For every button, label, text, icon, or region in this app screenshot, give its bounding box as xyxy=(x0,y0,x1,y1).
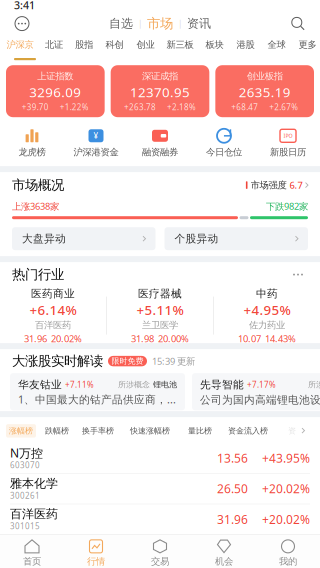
button[interactable]: Messages xyxy=(7,13,37,35)
staticText: 快速涨幅榜 xyxy=(130,426,170,436)
staticText: 26.50 xyxy=(217,481,248,497)
button[interactable]: 快速涨幅榜 xyxy=(130,426,170,436)
button[interactable]: 涨幅榜 xyxy=(6,424,36,438)
staticText: 兰卫医学 xyxy=(142,319,178,331)
button[interactable]: 板块 xyxy=(199,34,230,55)
button[interactable]: ¥ xyxy=(64,129,128,157)
button[interactable]: 自选 xyxy=(109,17,133,30)
button[interactable]: 全球 xyxy=(261,34,292,55)
staticText: +7.17% xyxy=(247,379,276,390)
staticText: +1.22% xyxy=(60,102,89,112)
button[interactable]: 先导智能 xyxy=(192,373,320,410)
button[interactable]: 更多 xyxy=(292,34,320,55)
staticText: +2.67% xyxy=(269,102,298,112)
button[interactable]: 市场 xyxy=(147,16,173,31)
button[interactable]: 港股 xyxy=(230,34,261,55)
button[interactable]: 北证 xyxy=(39,34,69,55)
button[interactable]: 我的 xyxy=(256,535,320,568)
staticText: 华友钴业 xyxy=(18,378,62,391)
button[interactable]: 资金流入榜 xyxy=(228,426,268,436)
button[interactable]: 医疗器械 xyxy=(107,288,213,344)
button[interactable]: 换手率榜 xyxy=(82,426,114,436)
button[interactable]: IPO xyxy=(256,129,320,157)
staticText: 沪深京 xyxy=(6,39,33,50)
button[interactable]: More xyxy=(288,268,308,282)
button[interactable]: 深证成指 xyxy=(111,65,209,117)
button[interactable]: 跌幅榜 xyxy=(45,426,69,436)
staticText: 301015 xyxy=(10,521,40,531)
staticText: 中药 xyxy=(256,287,278,300)
staticText: 公司为国内高端锂电池设备龙头… xyxy=(200,392,320,406)
staticText: 31.96 xyxy=(217,511,248,527)
staticText: 百洋医药 xyxy=(10,507,58,521)
staticText: 上证指数 xyxy=(37,70,73,82)
staticText: +4.95% xyxy=(243,301,290,319)
staticText: 下跌982家 xyxy=(266,200,308,212)
staticText: 北证 xyxy=(45,39,63,50)
staticText: 12370.95 xyxy=(130,83,190,101)
staticText: 换手率榜 xyxy=(82,426,114,436)
button[interactable]: 中药 xyxy=(214,288,320,344)
staticText: 先导智能 xyxy=(200,378,244,391)
staticText: 市场 xyxy=(147,15,173,32)
staticText: 10.07 xyxy=(238,332,261,345)
staticText: +7.11% xyxy=(65,379,94,390)
button[interactable]: Search xyxy=(283,13,313,35)
button[interactable]: 股指 xyxy=(69,34,99,55)
staticText: 港股 xyxy=(236,39,254,50)
staticText: 3296.09 xyxy=(29,83,81,101)
staticText: 更多 xyxy=(298,39,316,50)
button[interactable]: N万控 xyxy=(0,443,320,473)
staticText: 31.96 xyxy=(24,332,47,345)
button[interactable]: 机会 xyxy=(192,535,256,568)
button[interactable]: 交易 xyxy=(128,535,192,568)
button[interactable]: 医药商业 xyxy=(0,288,106,344)
staticText: 资金流入榜 xyxy=(228,426,268,436)
staticText: 锂电池 xyxy=(153,380,177,390)
button[interactable]: 科创 xyxy=(99,34,130,55)
staticText: 个股异动 xyxy=(174,232,218,245)
button[interactable]: 资讯 xyxy=(187,17,211,30)
button[interactable]: 首页 xyxy=(0,535,64,568)
staticText: ¥ xyxy=(93,130,98,141)
staticText: 行情 xyxy=(87,556,105,567)
staticText: 首页 xyxy=(23,556,41,567)
button[interactable]: 雅本化学 xyxy=(0,474,320,504)
staticText: 百洋医药 xyxy=(35,319,71,331)
staticText: +20.02% xyxy=(262,481,310,497)
staticText: 6.7 xyxy=(289,179,302,191)
staticText: 医疗器械 xyxy=(138,287,182,300)
button[interactable]: 龙虎榜 xyxy=(0,129,64,157)
button[interactable]: 今日仓位 xyxy=(192,129,256,157)
button[interactable]: 创业 xyxy=(130,34,161,55)
button[interactable]: 百洋医药 xyxy=(0,504,320,534)
button[interactable]: 大盘异动 xyxy=(12,227,155,250)
staticText: +2.18% xyxy=(167,102,196,112)
staticText: | xyxy=(138,18,142,29)
button[interactable]: 新三板 xyxy=(161,34,199,55)
staticText: 新股日历 xyxy=(270,146,306,158)
staticText: 沪深港资金 xyxy=(73,146,118,158)
button[interactable]: 创业板指 xyxy=(215,65,314,117)
staticText: 深证成指 xyxy=(142,70,178,82)
staticText: +5.11% xyxy=(136,301,183,319)
staticText: 市场概况 xyxy=(12,177,64,193)
staticText: 2635.19 xyxy=(239,83,291,101)
button[interactable]: 个股异动 xyxy=(164,227,308,250)
staticText: 板块 xyxy=(205,39,223,50)
button[interactable]: 市场强度 xyxy=(246,180,308,190)
staticText: 热门行业 xyxy=(12,266,64,283)
staticText: +6.14% xyxy=(29,301,76,319)
button[interactable]: 华友钴业 xyxy=(10,373,185,410)
button[interactable]: 行情 xyxy=(64,535,128,568)
staticText: 机会 xyxy=(215,556,233,567)
button[interactable]: 量比榜 xyxy=(188,426,212,436)
staticText: 今日仓位 xyxy=(206,146,242,158)
staticText: 限时免费 xyxy=(111,356,143,366)
staticText: 跌幅榜 xyxy=(45,426,69,436)
staticText: | xyxy=(178,18,182,29)
button[interactable]: 融资融券 xyxy=(128,129,192,157)
button[interactable]: 上证指数 xyxy=(6,65,105,117)
staticText: 31.98 xyxy=(131,332,154,345)
button[interactable]: 沪深京 xyxy=(1,34,39,55)
